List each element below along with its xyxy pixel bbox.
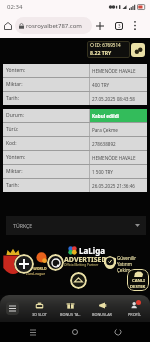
staticText: BONUSLAR — [92, 312, 112, 317]
staticText: 26.05.2025 21:36:46 — [92, 183, 135, 189]
button[interactable]: More options — [129, 19, 141, 31]
button[interactable]: ID: 6769514 — [87, 41, 130, 58]
staticText: Türü: — [6, 126, 19, 133]
staticText: 02:34 — [7, 3, 23, 11]
staticText: DESTEK — [130, 284, 146, 290]
button[interactable]: Menu — [0, 295, 24, 322]
staticText: CANLI — [132, 278, 145, 284]
button[interactable]: Home — [1, 19, 14, 32]
button[interactable]: WhatsApp — [47, 254, 64, 271]
staticText: Yöntem: — [6, 154, 26, 161]
staticText: 27.05.2025 08:43:58 — [92, 96, 135, 102]
staticText: Yöntem: — [6, 67, 26, 74]
staticText: Kod: — [6, 140, 17, 147]
button[interactable]: Back — [108, 322, 128, 342]
staticText: ADVERTISED — [64, 255, 107, 265]
staticText: Çekim — [117, 267, 131, 273]
staticText: ID: 6769514 — [95, 42, 121, 48]
staticText: Miktar: — [6, 168, 23, 175]
staticText: PROFİL — [128, 312, 141, 317]
button[interactable]: BONUSLAR — [86, 295, 118, 322]
staticText: Para Çekme — [92, 127, 118, 133]
staticText: 8.22 TRY — [90, 49, 112, 56]
button[interactable]: PROFİL — [118, 295, 150, 322]
staticText: TÜRKÇE — [13, 222, 33, 229]
staticText: BONUS TA.. — [60, 312, 81, 317]
staticText: EuroLeague — [26, 271, 46, 276]
staticText: Tarih: — [6, 95, 19, 102]
button[interactable]: 3D SLOT — [24, 295, 55, 322]
staticText: SRL WORLD — [26, 266, 47, 271]
staticText: LaLiga — [79, 245, 105, 256]
staticText: rosroyalbet787.com — [26, 22, 82, 30]
button[interactable]: Recent apps — [23, 322, 43, 342]
staticText: Güvenilir — [117, 255, 137, 261]
button[interactable]: BONUS TA.. — [55, 295, 86, 322]
staticText: Tarih: — [6, 182, 19, 189]
button[interactable]: CANLI — [127, 269, 149, 291]
button[interactable]: Add — [14, 254, 34, 274]
staticText: Durum: — [6, 112, 24, 119]
staticText: HEMENÖDE HAVALE — [92, 68, 136, 74]
staticText: Kabul edildi — [92, 113, 119, 119]
button[interactable]: rosroyalbet787.com — [15, 17, 92, 34]
staticText: Yatırım — [117, 261, 132, 267]
staticText: 1 500 TRY — [92, 169, 113, 175]
staticText: HEMENÖDE HAVALE — [92, 155, 136, 161]
button[interactable]: New tab — [93, 19, 107, 33]
staticText: 278638892 — [92, 141, 116, 147]
button[interactable]: Tabs — [112, 19, 126, 33]
staticText: Miktar: — [6, 81, 23, 88]
button[interactable]: TÜRKÇE — [6, 216, 146, 235]
button[interactable]: Deposit — [131, 43, 145, 57]
staticText: 3D SLOT — [32, 312, 47, 317]
button[interactable]: Home — [65, 322, 85, 342]
staticText: Official Betting Partner — [64, 263, 99, 267]
staticText: 3 — [118, 23, 121, 29]
staticText: 400 TRY — [92, 82, 110, 88]
